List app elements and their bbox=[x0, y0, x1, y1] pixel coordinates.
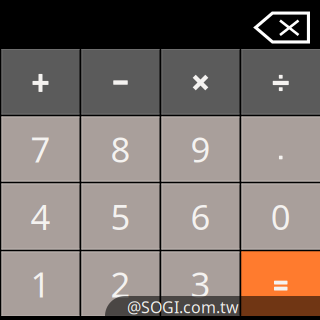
button[interactable]: Add bbox=[1, 49, 79, 114]
staticText: 2 bbox=[110, 261, 130, 307]
staticText: 6 bbox=[190, 193, 210, 239]
staticText: 3 bbox=[190, 261, 210, 307]
button[interactable]: 8 bbox=[81, 116, 159, 181]
button[interactable]: 5 bbox=[81, 183, 159, 249]
button[interactable]: 1 bbox=[1, 251, 79, 316]
staticText: 5 bbox=[110, 193, 130, 239]
staticText: 9 bbox=[190, 126, 210, 172]
button[interactable]: Multiply bbox=[161, 49, 239, 114]
button[interactable]: 7 bbox=[1, 116, 79, 181]
staticText: 4 bbox=[30, 193, 50, 239]
button[interactable]: 4 bbox=[1, 183, 79, 249]
staticText: 7 bbox=[30, 126, 50, 172]
button[interactable]: 0 bbox=[241, 183, 320, 249]
staticText: 8 bbox=[110, 126, 130, 172]
button[interactable]: 3 bbox=[161, 251, 239, 316]
button[interactable]: 2 bbox=[81, 251, 159, 316]
button[interactable]: Decimal point bbox=[241, 116, 320, 181]
staticText: 0 bbox=[271, 193, 291, 239]
staticText: @SOGI.com.tw bbox=[127, 296, 239, 318]
button[interactable]: 6 bbox=[161, 183, 239, 249]
button[interactable]: Divide bbox=[241, 49, 320, 114]
button[interactable]: Equals bbox=[241, 251, 320, 316]
button[interactable]: 9 bbox=[161, 116, 239, 181]
staticText: 1 bbox=[30, 261, 50, 307]
button[interactable]: Delete bbox=[248, 3, 316, 52]
button[interactable]: Subtract bbox=[81, 49, 159, 114]
